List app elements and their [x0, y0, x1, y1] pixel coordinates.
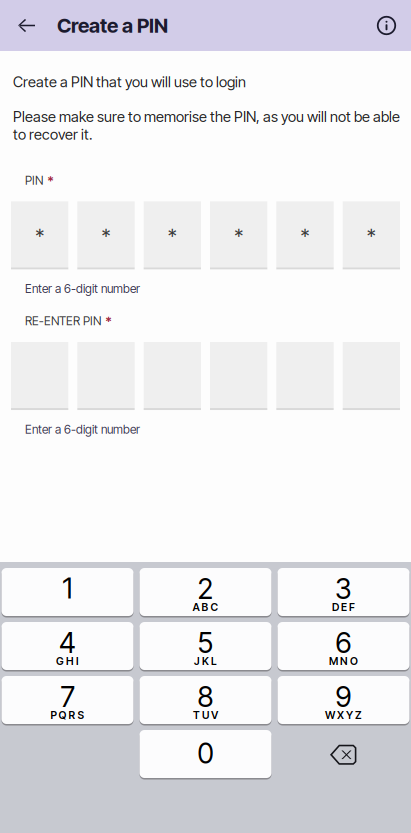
- staticText: P Q R S: [50, 709, 84, 721]
- staticText: 2: [197, 572, 213, 606]
- button[interactable]: Delete: [277, 730, 409, 779]
- staticText: *: [367, 223, 376, 247]
- staticText: 0: [197, 736, 213, 770]
- staticText: Create a PIN: [57, 13, 168, 38]
- staticText: J K L: [194, 655, 217, 667]
- staticText: Enter a 6-digit number: [25, 422, 140, 436]
- staticText: *: [47, 172, 54, 188]
- button[interactable]: 8: [139, 676, 271, 725]
- staticText: D E F: [332, 601, 355, 613]
- button[interactable]: 2: [139, 568, 271, 617]
- staticText: G H I: [56, 655, 79, 667]
- staticText: 6: [335, 626, 351, 660]
- staticText: *: [168, 223, 177, 247]
- staticText: 3: [335, 572, 352, 606]
- staticText: *: [234, 223, 243, 247]
- staticText: 8: [197, 680, 213, 714]
- staticText: 4: [59, 626, 76, 660]
- staticText: Create a PIN that you will use to login: [13, 73, 246, 91]
- staticText: Enter a 6-digit number: [25, 281, 140, 296]
- button[interactable]: 0: [139, 730, 271, 779]
- staticText: PIN: [25, 173, 43, 187]
- button[interactable]: 3: [277, 568, 409, 617]
- button[interactable]: 6: [277, 622, 409, 671]
- button[interactable]: Information: [362, 0, 411, 51]
- staticText: 5: [197, 626, 213, 660]
- staticText: *: [35, 223, 44, 247]
- staticText: Please make sure to memorise the PIN, as…: [13, 108, 400, 143]
- staticText: W X Y Z: [325, 709, 362, 721]
- staticText: *: [105, 313, 112, 329]
- button[interactable]: 1: [1, 568, 133, 617]
- button[interactable]: 4: [1, 622, 133, 671]
- staticText: *: [300, 223, 309, 247]
- staticText: M N O: [329, 655, 358, 667]
- staticText: *: [101, 223, 110, 247]
- button[interactable]: 9: [277, 676, 409, 725]
- staticText: 9: [335, 680, 351, 714]
- button[interactable]: Back: [0, 0, 53, 51]
- button[interactable]: 7: [1, 676, 133, 725]
- staticText: 1: [62, 571, 72, 605]
- button[interactable]: 5: [139, 622, 271, 671]
- staticText: T U V: [193, 709, 218, 721]
- staticText: A B C: [192, 601, 218, 613]
- staticText: RE-ENTER PIN: [25, 314, 101, 328]
- staticText: 7: [60, 680, 74, 714]
